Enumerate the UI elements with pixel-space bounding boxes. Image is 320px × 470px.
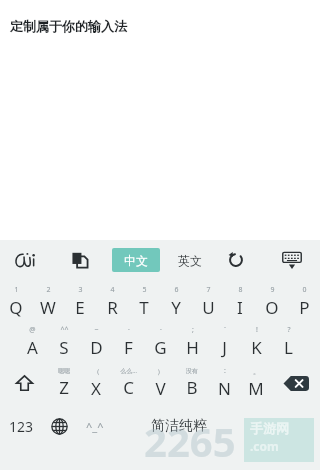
staticText: D [90,336,103,359]
button[interactable]: ! [240,322,272,362]
staticText: Q [9,296,23,319]
staticText: I [237,296,243,319]
staticText: 8 [238,285,243,295]
button[interactable]: 收起键盘 [278,248,306,272]
button[interactable]: 5 [128,282,160,322]
staticText: 2 [46,285,51,295]
button[interactable]: 2 [32,282,64,322]
staticText: 简洁纯粹 [151,417,207,435]
staticText: ~ [94,325,99,335]
staticText: E [75,296,85,319]
staticText: ） [157,367,164,376]
staticText: 1 [14,285,19,295]
button[interactable]: Shift [0,362,48,404]
staticText: 7 [206,285,211,295]
button[interactable]: 中文 [112,248,160,272]
staticText: W [40,296,56,319]
staticText: T [139,296,149,319]
staticText: 没有 [186,367,198,375]
staticText: L [284,336,293,359]
staticText: ? [287,325,291,335]
staticText: ^^ [60,325,69,335]
staticText: 6 [174,285,179,295]
staticText: P [299,296,310,319]
staticText: .com [250,438,279,454]
staticText: J [222,336,227,359]
button[interactable]: 撤销 [224,249,248,271]
button[interactable]: 确定 [246,404,320,448]
button[interactable]: 9 [256,282,288,322]
button[interactable]: 7 [192,282,224,322]
button[interactable]: 1 [0,282,32,322]
staticText: 5 [142,285,147,295]
button[interactable]: 8 [224,282,256,322]
staticText: K [251,336,262,359]
staticText: N [218,377,231,400]
staticText: H [186,336,199,359]
staticText: F [124,336,133,359]
button[interactable]: 嗯嗯 [48,362,80,404]
staticText: S [59,336,69,359]
staticText: M [248,377,264,400]
button[interactable]: 。 [240,362,272,404]
button[interactable]: @ [16,322,48,362]
staticText: （ [93,367,100,376]
staticText: 中文 [124,253,148,268]
staticText: : [224,366,226,376]
staticText: A [27,336,38,359]
button[interactable]: 6 [160,282,192,322]
staticText: ` [224,325,226,335]
staticText: 2265 [144,414,236,468]
staticText: 手游网 [250,420,289,436]
staticText: 4 [110,285,115,295]
staticText: 0 [302,285,307,295]
staticText: R [107,296,118,319]
staticText: 。 [253,367,260,376]
button[interactable]: · [144,322,176,362]
staticText: ! [256,325,258,335]
staticText: 9 [270,285,275,295]
staticText: · [128,325,130,335]
button[interactable]: 么么… [112,362,144,404]
button[interactable]: ） [144,362,176,404]
staticText: 3 [78,285,83,295]
staticText: 123 [9,417,34,436]
staticText: 么么… [120,367,137,375]
staticText: U [202,296,215,319]
staticText: G [154,336,167,359]
staticText: @ [29,325,36,335]
button[interactable]: ~ [80,322,112,362]
staticText: Y [171,296,181,319]
staticText: O [265,296,279,319]
button[interactable]: 0 [288,282,320,322]
button[interactable]: 没有 [176,362,208,404]
button[interactable]: 123 [0,404,42,448]
button[interactable]: ^^ [48,322,80,362]
button[interactable]: ; [176,322,208,362]
staticText: V [155,377,166,400]
button[interactable]: 表情 [77,404,112,448]
button[interactable]: 英文 [168,248,212,272]
staticText: Z [59,376,69,399]
staticText: · [160,325,162,335]
staticText: 嗯嗯 [58,367,70,375]
staticText: B [186,376,198,399]
button[interactable]: 切换语言 [42,404,77,448]
button[interactable]: · [112,322,144,362]
button[interactable]: ? [272,322,304,362]
staticText: C [123,376,134,399]
staticText: 英文 [178,253,202,268]
button[interactable]: （ [80,362,112,404]
button[interactable]: 剪贴板 [68,249,92,271]
button[interactable]: 简洁纯粹 [112,404,246,448]
button[interactable]: 4 [96,282,128,322]
staticText: 定制属于你的输入法 [10,18,127,34]
button[interactable]: ` [208,322,240,362]
button[interactable]: 3 [64,282,96,322]
staticText: ; [192,325,194,335]
staticText: ^_^ [86,419,104,434]
staticText: X [91,377,101,400]
button[interactable]: : [208,362,240,404]
button[interactable]: 删除 [272,362,320,404]
button[interactable]: 输入法品牌 [12,248,38,272]
